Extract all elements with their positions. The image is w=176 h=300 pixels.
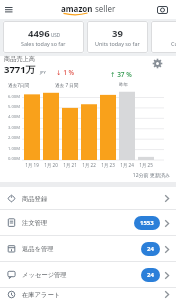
staticText: 24	[147, 245, 154, 253]
button[interactable]: 返品を管理	[0, 236, 176, 262]
button[interactable]	[152, 58, 163, 69]
staticText: 1月 21	[60, 162, 80, 168]
staticText: ↓ 1 %	[56, 68, 75, 77]
button[interactable]	[5, 7, 13, 13]
staticText: 注文管理	[22, 219, 48, 227]
staticText: 商品売上高	[4, 55, 35, 63]
staticText: 1月 23	[98, 162, 118, 168]
staticText: amazon	[61, 3, 93, 14]
staticText: seller	[95, 3, 116, 14]
staticText: 在庫アラート	[22, 291, 61, 299]
staticText: 1月 19	[22, 162, 42, 168]
staticText: 昨年	[119, 82, 129, 88]
staticText: 3771万	[4, 63, 36, 76]
staticText: JPY	[40, 70, 46, 75]
button[interactable]	[157, 5, 168, 14]
staticText: 39	[112, 27, 123, 40]
staticText: 1月 22	[79, 162, 99, 168]
staticText: 4496 USD	[28, 27, 60, 40]
staticText: Units today so far	[95, 40, 140, 47]
staticText: 1月 25	[136, 162, 156, 168]
staticText: 1.00M	[0, 146, 20, 152]
button[interactable]: 61.	[151, 21, 176, 53]
staticText: 1553	[140, 219, 154, 227]
button[interactable]: 注文管理	[0, 210, 176, 236]
staticText: メッセージ管理	[22, 271, 67, 279]
button[interactable]: 在庫アラート	[0, 288, 176, 300]
staticText: 2.00M	[0, 135, 20, 141]
button[interactable]: 4496 USD	[3, 21, 84, 53]
staticText: ↑ 37 %	[110, 70, 132, 79]
button[interactable]: 商品登録	[0, 187, 176, 210]
staticText: 12分前 更新済み	[0, 172, 170, 179]
button[interactable]: メッセージ管理	[0, 262, 176, 288]
staticText: 24	[147, 271, 154, 279]
staticText: 1月 24	[117, 162, 137, 168]
staticText: 過去7日間	[8, 82, 30, 88]
staticText: 3.00M	[0, 125, 20, 131]
button[interactable]: 39	[87, 21, 148, 53]
staticText: 0.00M	[0, 156, 20, 162]
staticText: 1月 20	[41, 162, 61, 168]
staticText: 返品を管理	[22, 245, 54, 253]
staticText: 4.00M	[0, 114, 20, 120]
staticText: 6.00M	[0, 94, 20, 100]
staticText: 過去 7 日間	[55, 82, 79, 88]
staticText: Sales today so far	[21, 40, 66, 47]
staticText: 商品登録	[22, 195, 48, 203]
staticText: 5.00M	[0, 104, 20, 110]
staticText: Current bala	[171, 40, 176, 47]
